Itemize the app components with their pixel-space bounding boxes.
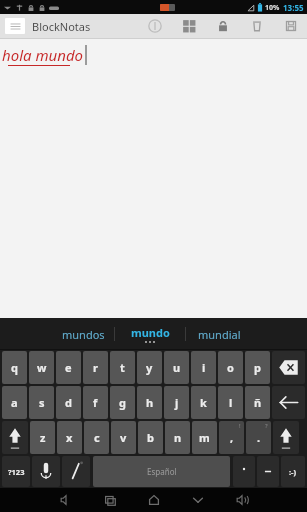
staticText: z — [40, 430, 46, 445]
staticText: ?123 — [8, 467, 25, 477]
staticText: o — [227, 360, 234, 375]
staticText: v — [120, 430, 127, 445]
button[interactable]: x — [57, 421, 82, 454]
button[interactable]: b — [138, 421, 163, 454]
button[interactable]: w — [29, 351, 54, 384]
staticText: e — [65, 360, 72, 375]
button[interactable]: Dash — [257, 456, 279, 487]
button[interactable]: Slash — [62, 456, 90, 487]
button[interactable]: Volume up — [231, 489, 253, 511]
staticText: y — [146, 360, 153, 375]
button[interactable]: Recent apps — [99, 489, 121, 511]
button[interactable]: mundial — [186, 319, 252, 349]
staticText: r — [93, 360, 98, 375]
button[interactable]: ?123 — [2, 456, 30, 487]
staticText: g — [119, 395, 126, 410]
button[interactable]: Backspace — [272, 351, 305, 384]
staticText: k — [200, 395, 207, 410]
button[interactable]: u — [164, 351, 189, 384]
button[interactable]: Volume down — [55, 489, 77, 511]
button[interactable]: p — [245, 351, 270, 384]
staticText: ? — [265, 422, 268, 430]
button[interactable]: Back — [187, 489, 209, 511]
staticText: c — [94, 430, 100, 445]
staticText: q — [11, 360, 18, 375]
button[interactable]: Voice input — [32, 456, 60, 487]
staticText: 13:55 — [283, 2, 304, 13]
button[interactable]: Español — [93, 456, 230, 487]
button[interactable]: mundos — [52, 319, 114, 349]
staticText: f — [93, 395, 98, 410]
staticText: :-) — [289, 467, 297, 477]
button[interactable]: h — [137, 386, 162, 419]
staticText: mundos — [62, 327, 105, 342]
staticText: 10% — [265, 3, 280, 13]
staticText: w — [37, 360, 47, 375]
button[interactable]: Apostrophe — [233, 456, 255, 487]
staticText: a — [11, 395, 18, 410]
staticText: . — [257, 430, 261, 445]
button[interactable]: i — [191, 351, 216, 384]
button[interactable]: l — [218, 386, 243, 419]
button[interactable]: f — [83, 386, 108, 419]
button[interactable]: v — [111, 421, 136, 454]
staticText: i — [202, 360, 206, 375]
staticText: m — [199, 430, 210, 445]
button[interactable]: s — [29, 386, 54, 419]
staticText: mundo — [131, 325, 170, 340]
staticText: s — [39, 395, 45, 410]
staticText: d — [65, 395, 72, 410]
button[interactable]: e — [56, 351, 81, 384]
button[interactable]: ñ — [245, 386, 270, 419]
button[interactable]: d — [56, 386, 81, 419]
button[interactable]: k — [191, 386, 216, 419]
staticText: Español — [147, 466, 177, 477]
button[interactable]: z — [30, 421, 55, 454]
button[interactable]: q — [2, 351, 27, 384]
button[interactable]: Info — [145, 16, 165, 36]
staticText: u — [173, 360, 181, 375]
button[interactable]: ! — [219, 421, 244, 454]
staticText: p — [254, 360, 261, 375]
button[interactable]: g — [110, 386, 135, 419]
staticText: mundial — [198, 327, 241, 342]
button[interactable]: Delete — [247, 16, 267, 36]
staticText: x — [66, 430, 73, 445]
button[interactable]: y — [137, 351, 162, 384]
button[interactable]: o — [218, 351, 243, 384]
staticText: j — [175, 395, 179, 410]
staticText: ! — [239, 422, 241, 430]
button[interactable]: t — [110, 351, 135, 384]
button[interactable]: Enter — [272, 386, 305, 419]
staticText: l — [229, 395, 233, 410]
button[interactable]: m — [192, 421, 217, 454]
button[interactable]: ? — [246, 421, 271, 454]
button[interactable]: c — [84, 421, 109, 454]
button[interactable]: Lock — [213, 16, 233, 36]
button[interactable]: mundo — [115, 319, 185, 349]
button[interactable]: Shift — [2, 421, 28, 454]
button[interactable]: Home — [143, 489, 165, 511]
button[interactable]: hola mundo — [0, 39, 307, 318]
button[interactable]: Save — [281, 16, 301, 36]
button[interactable]: a — [2, 386, 27, 419]
staticText: t — [120, 360, 125, 375]
staticText: ñ — [254, 395, 262, 410]
staticText: hola mundo — [2, 45, 84, 65]
button[interactable]: n — [165, 421, 190, 454]
button[interactable]: :-) — [281, 456, 305, 487]
button[interactable]: Shift — [273, 421, 299, 454]
staticText: , — [230, 430, 234, 445]
staticText: b — [147, 430, 154, 445]
button[interactable]: j — [164, 386, 189, 419]
staticText: n — [174, 430, 182, 445]
button[interactable]: r — [83, 351, 108, 384]
staticText: h — [146, 395, 154, 410]
staticText: BlockNotas — [32, 19, 91, 34]
button[interactable]: App icon — [5, 18, 25, 34]
button[interactable]: Apps — [179, 16, 199, 36]
